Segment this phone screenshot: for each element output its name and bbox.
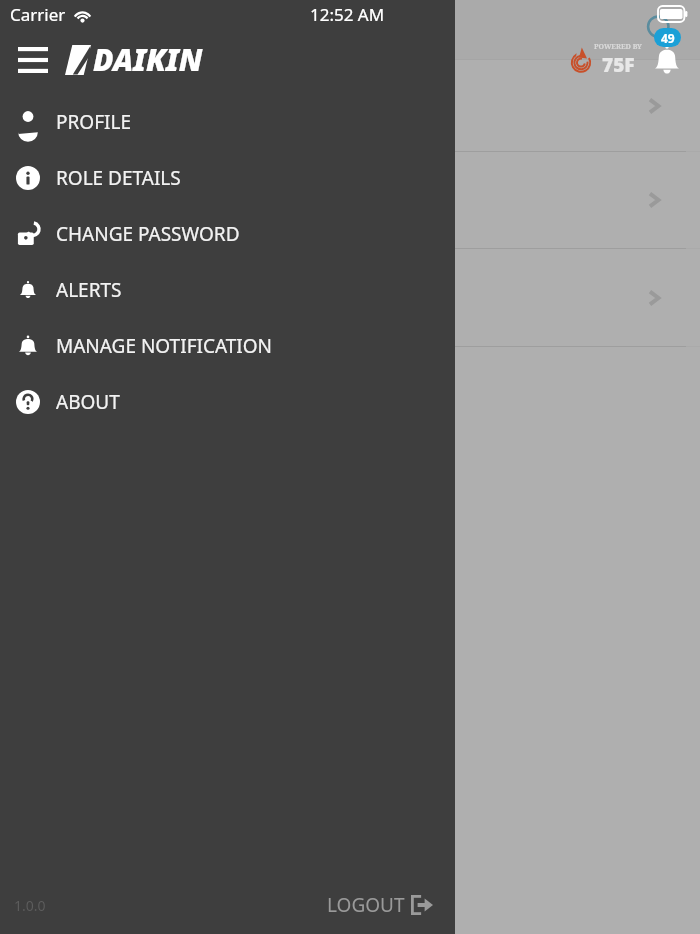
staticText: 75F [602,52,635,78]
staticText: ROLE DETAILS [56,165,181,191]
button[interactable]: Menu [18,47,48,73]
staticText: ABOUT [56,389,120,415]
staticText: POWERED BY [594,42,642,52]
staticText: CHANGE PASSWORD [56,221,240,247]
button[interactable]: Notifications [652,43,682,77]
staticText: Carrier [10,3,66,26]
staticText: 49 [661,30,675,46]
staticText: LOGOUT [327,892,405,918]
button[interactable]: MANAGE NOTIFICATION [0,318,455,374]
button[interactable]: CHANGE PASSWORD [0,206,455,262]
staticText: 12:52 AM [310,3,385,26]
staticText: PROFILE [56,109,131,135]
staticText: DAIKIN [93,39,203,80]
button[interactable]: LOGOUT [327,892,433,918]
button[interactable] [455,60,700,151]
staticText: 1.0.0 [14,896,46,915]
button[interactable]: ROLE DETAILS [0,150,455,206]
button[interactable]: Search [644,13,678,47]
button[interactable]: ALERTS [0,262,455,318]
staticText: ALERTS [56,277,122,303]
button[interactable]: PROFILE [0,94,455,150]
staticText: MANAGE NOTIFICATION [56,333,273,359]
button[interactable]: ABOUT [0,374,455,430]
